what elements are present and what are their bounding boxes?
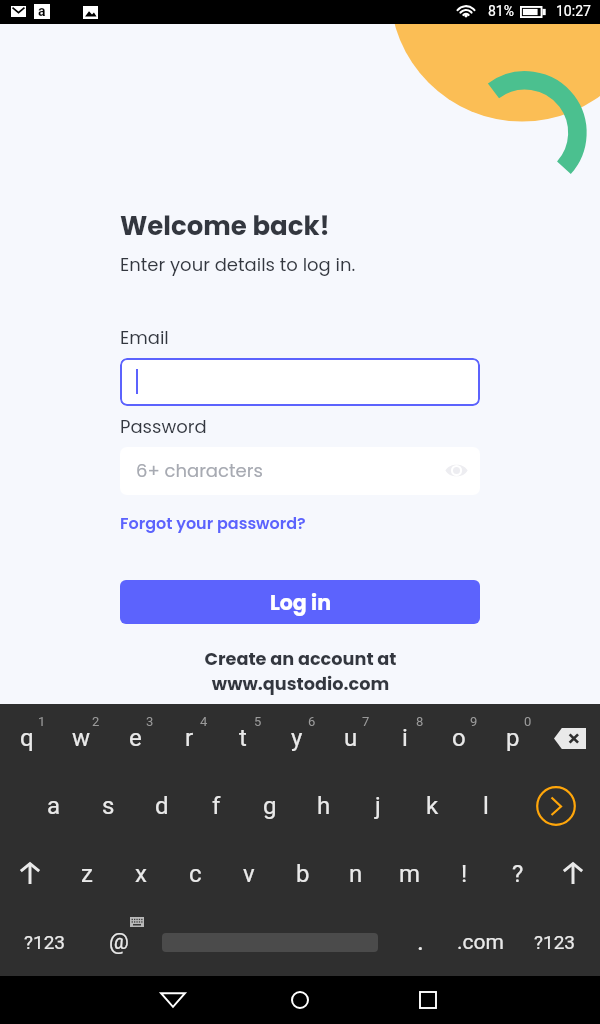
button[interactable]: [432, 710, 486, 770]
button[interactable]: [108, 710, 162, 770]
button[interactable]: [114, 846, 168, 906]
staticText: g: [263, 792, 277, 820]
staticText: s: [102, 792, 115, 820]
staticText: a: [38, 3, 46, 18]
staticText: 6+ characters: [136, 458, 263, 483]
staticText: 2: [92, 714, 100, 729]
staticText: 10:27: [556, 3, 591, 19]
button[interactable]: [297, 778, 351, 838]
staticText: 81%: [488, 3, 514, 19]
button[interactable]: [162, 710, 216, 770]
staticText: Enter your details to log in.: [120, 252, 356, 277]
staticText: 7: [362, 714, 370, 729]
staticText: Log in: [270, 588, 331, 617]
button[interactable]: [216, 710, 270, 770]
staticText: Welcome back!: [120, 208, 330, 244]
staticText: 8: [416, 714, 424, 729]
button[interactable]: [449, 915, 511, 973]
button[interactable]: Shift: [0, 843, 60, 903]
staticText: d: [155, 792, 169, 820]
button[interactable]: [459, 778, 513, 838]
staticText: k: [426, 792, 439, 820]
button[interactable]: [0, 915, 89, 973]
button[interactable]: Forgot your password?: [120, 512, 306, 534]
button[interactable]: Enter: [513, 774, 600, 838]
staticText: t: [239, 724, 247, 752]
button[interactable]: [120, 358, 480, 406]
staticText: 3: [146, 714, 154, 729]
staticText: i: [402, 724, 408, 752]
staticText: w: [72, 724, 91, 752]
staticText: b: [296, 860, 310, 888]
button[interactable]: Log in: [120, 580, 480, 624]
staticText: n: [349, 860, 363, 888]
button[interactable]: [384, 846, 438, 906]
button[interactable]: Back: [149, 976, 197, 1024]
staticText: 0: [524, 714, 532, 729]
button[interactable]: [0, 710, 54, 770]
button[interactable]: [511, 915, 600, 973]
button[interactable]: Recent apps: [404, 976, 452, 1024]
button[interactable]: Create an account at www.qustodio.com: [120, 646, 480, 696]
staticText: j: [375, 792, 381, 820]
button[interactable]: [222, 846, 276, 906]
staticText: 5: [254, 714, 262, 729]
staticText: @: [109, 929, 129, 955]
staticText: 1: [38, 714, 46, 729]
staticText: ?123: [24, 931, 66, 953]
button[interactable]: [243, 778, 297, 838]
button[interactable]: [89, 915, 151, 973]
staticText: p: [506, 724, 520, 752]
staticText: 4: [200, 714, 208, 729]
button[interactable]: [391, 915, 449, 973]
button[interactable]: [492, 846, 546, 906]
staticText: Email: [120, 325, 169, 350]
staticText: 9: [470, 714, 478, 729]
button[interactable]: [270, 710, 324, 770]
staticText: Forgot your password?: [120, 512, 306, 534]
button[interactable]: [351, 778, 405, 838]
staticText: !: [461, 860, 468, 888]
staticText: h: [317, 792, 331, 820]
button[interactable]: [438, 846, 492, 906]
staticText: .com: [457, 930, 504, 955]
button[interactable]: Show password: [120, 447, 480, 495]
staticText: c: [189, 860, 202, 888]
button[interactable]: [135, 778, 189, 838]
staticText: z: [81, 860, 93, 888]
button[interactable]: [54, 710, 108, 770]
staticText: Password: [120, 414, 207, 439]
button[interactable]: [81, 778, 135, 838]
button[interactable]: Home: [276, 976, 324, 1024]
button[interactable]: [168, 846, 222, 906]
staticText: ?123: [534, 931, 576, 953]
button[interactable]: Show password: [435, 449, 477, 491]
staticText: o: [452, 724, 466, 752]
button[interactable]: [330, 846, 384, 906]
staticText: l: [483, 792, 489, 820]
button[interactable]: [324, 710, 378, 770]
button[interactable]: [405, 778, 459, 838]
button[interactable]: [189, 778, 243, 838]
staticText: e: [129, 724, 142, 752]
button[interactable]: Space: [151, 915, 391, 973]
staticText: 6: [308, 714, 316, 729]
staticText: f: [212, 792, 221, 820]
staticText: y: [291, 724, 303, 752]
button[interactable]: Shift: [545, 843, 600, 903]
staticText: ?: [512, 860, 524, 888]
button[interactable]: [378, 710, 432, 770]
staticText: Create an account at www.qustodio.com: [204, 646, 397, 696]
button[interactable]: Delete: [540, 708, 600, 768]
staticText: m: [399, 860, 421, 888]
staticText: v: [243, 860, 255, 888]
button[interactable]: [486, 710, 540, 770]
staticText: a: [47, 792, 61, 820]
button[interactable]: [60, 846, 114, 906]
button[interactable]: [27, 778, 81, 838]
button[interactable]: [276, 846, 330, 906]
staticText: x: [135, 860, 147, 888]
staticText: q: [20, 724, 34, 752]
staticText: r: [185, 724, 194, 752]
staticText: .: [417, 926, 424, 956]
